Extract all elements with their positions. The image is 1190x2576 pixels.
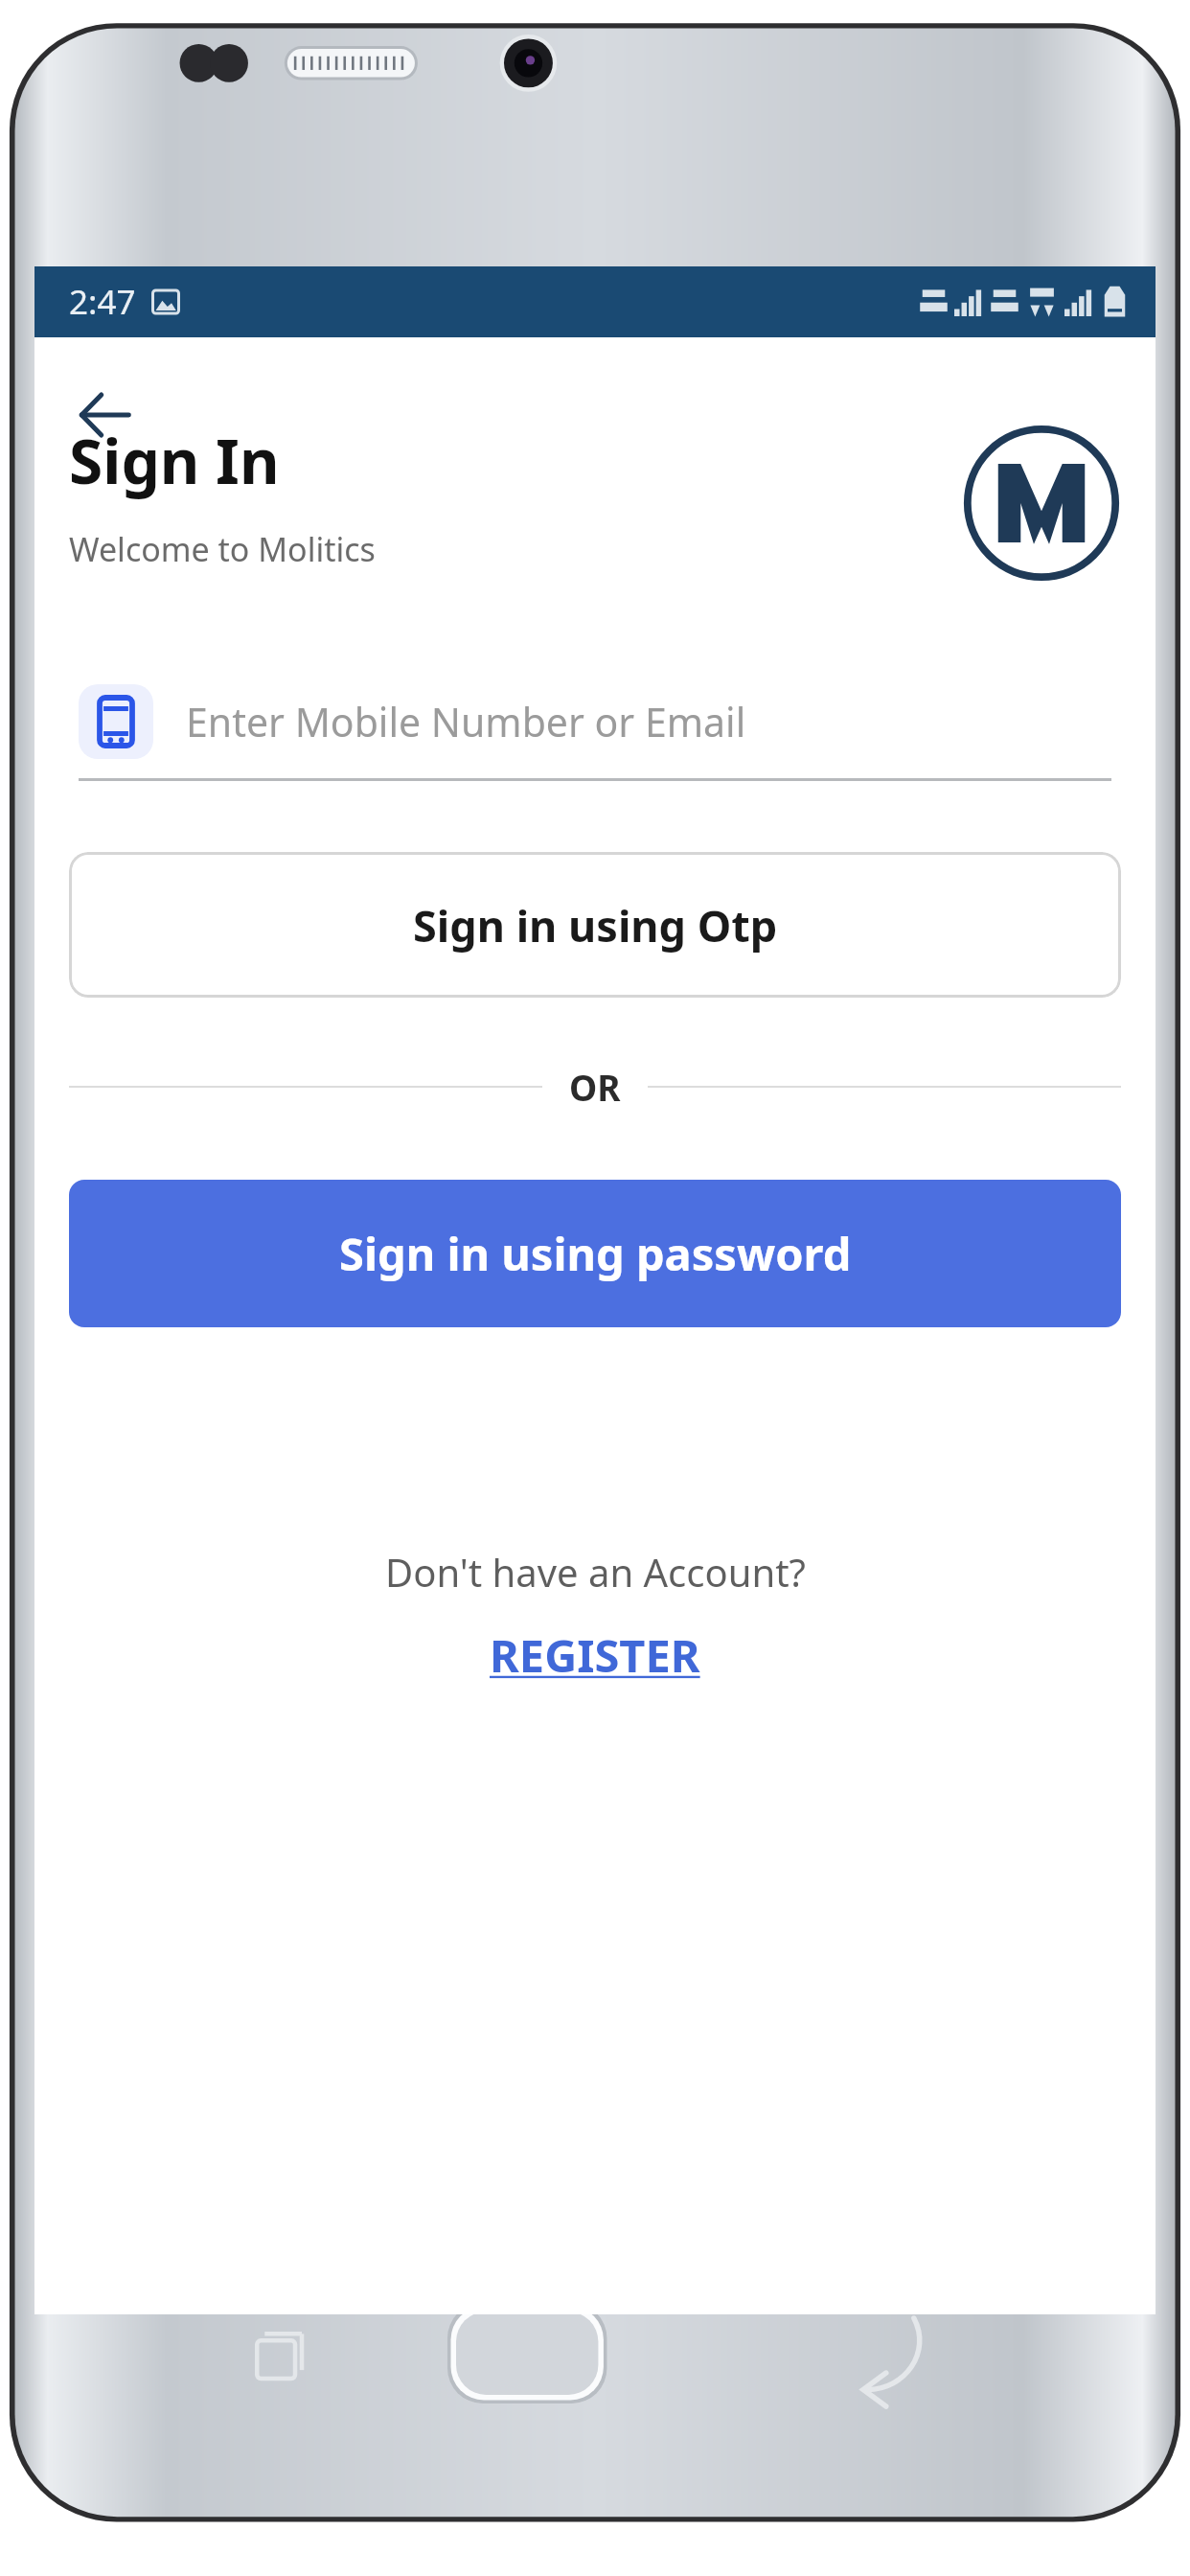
button[interactable]: REGISTER [476, 1621, 714, 1690]
other: Molitics logo [962, 424, 1121, 583]
button[interactable]: Back [69, 379, 140, 450]
button[interactable]: Sign in using Otp [69, 852, 1121, 998]
staticText: Sign in using Otp [413, 896, 778, 954]
staticText: Enter Mobile Number or Email [186, 695, 746, 748]
staticText: 2:47 [69, 279, 136, 325]
staticText: Don't have an Account? [385, 1546, 806, 1598]
button[interactable]: Sign in using password [69, 1180, 1121, 1327]
staticText: Sign In [69, 419, 280, 502]
staticText: REGISTER [490, 1624, 700, 1686]
staticText: OR [569, 1063, 621, 1111]
staticText: Welcome to Molitics [69, 527, 376, 571]
button[interactable]: Enter Mobile Number or Email [79, 684, 1111, 781]
staticText: Sign in using password [339, 1223, 852, 1284]
